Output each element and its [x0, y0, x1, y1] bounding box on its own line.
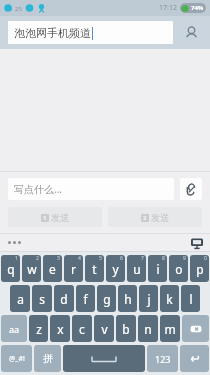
staticText: 9 [183, 255, 186, 262]
staticText: 7 [141, 255, 144, 262]
staticText: 25 [15, 5, 22, 13]
staticText: 4 [78, 255, 81, 262]
staticText: f [83, 291, 88, 307]
staticText: 8 [162, 255, 165, 262]
button[interactable]: q [1, 255, 20, 282]
button[interactable]: 拼 [34, 345, 61, 372]
button[interactable]: a [10, 285, 30, 312]
button[interactable]: h [118, 285, 137, 312]
staticText: r [71, 261, 76, 277]
staticText: @_#! [9, 354, 25, 364]
button[interactable]: y [106, 255, 125, 282]
staticText: j [147, 291, 151, 307]
button[interactable]: r [64, 255, 83, 282]
staticText: 5 [99, 255, 102, 262]
button[interactable]: z [29, 315, 48, 342]
staticText: x [57, 321, 64, 337]
button[interactable]: k [160, 285, 179, 312]
staticText: aa [9, 323, 20, 335]
staticText: 17:12 [159, 3, 177, 13]
staticText: 0 [204, 255, 207, 262]
staticText: n [144, 321, 152, 337]
staticText: 74% [191, 4, 204, 12]
staticText: p [196, 261, 204, 277]
staticText: s [39, 291, 45, 307]
staticText: y [112, 261, 119, 277]
button[interactable]: d [54, 285, 74, 312]
staticText: 发送 [51, 212, 69, 223]
button[interactable]: e [43, 255, 62, 282]
button[interactable]: c [72, 315, 92, 342]
button[interactable]: i [148, 255, 167, 282]
button[interactable]: Account [178, 20, 204, 46]
button[interactable]: Enter [180, 345, 209, 372]
button[interactable]: j [139, 285, 158, 312]
staticText: d [60, 291, 68, 307]
button[interactable]: @_#! [1, 345, 32, 372]
staticText: 1 [43, 214, 47, 222]
button[interactable]: s [32, 285, 52, 312]
staticText: b [122, 321, 130, 337]
button[interactable]: 泡泡网手机频道 [8, 21, 173, 44]
staticText: 拼 [43, 352, 53, 365]
button[interactable]: 写点什么... [8, 178, 174, 200]
staticText: o [175, 261, 183, 277]
button[interactable]: f [76, 285, 95, 312]
button[interactable]: 123 [147, 345, 178, 372]
staticText: t [92, 261, 97, 277]
button[interactable]: p [190, 255, 209, 282]
button[interactable]: m [160, 315, 180, 342]
button[interactable]: Backspace [182, 315, 209, 342]
staticText: q [7, 261, 15, 277]
button[interactable]: Space [63, 345, 145, 372]
button[interactable]: Keyboard [189, 235, 204, 250]
staticText: c [79, 321, 85, 337]
staticText: 泡泡网手机频道 [14, 26, 91, 40]
button[interactable]: g [97, 285, 116, 312]
button[interactable]: b [116, 315, 136, 342]
button[interactable]: o [169, 255, 188, 282]
staticText: m [164, 321, 176, 337]
staticText: 3 [57, 255, 60, 262]
button[interactable]: 2 [108, 207, 202, 227]
button[interactable]: Shift [1, 315, 27, 342]
button[interactable]: Attach [180, 178, 202, 200]
button[interactable]: w [22, 255, 41, 282]
staticText: u [133, 261, 141, 277]
button[interactable]: t [85, 255, 104, 282]
staticText: g [103, 291, 111, 307]
button[interactable]: 1 [8, 207, 102, 227]
staticText: 123 [155, 353, 171, 365]
staticText: a [17, 291, 24, 307]
staticText: l [189, 291, 193, 307]
staticText: i [156, 261, 160, 277]
staticText: z [36, 321, 42, 337]
staticText: e [49, 261, 56, 277]
staticText: 6 [120, 255, 123, 262]
button[interactable]: x [50, 315, 70, 342]
staticText: 2 [143, 214, 147, 222]
staticText: 1 [15, 255, 18, 262]
staticText: k [166, 291, 173, 307]
staticText: v [101, 321, 108, 337]
button[interactable]: More [8, 241, 21, 244]
button[interactable]: u [127, 255, 146, 282]
staticText: w [27, 261, 37, 277]
button[interactable]: v [94, 315, 114, 342]
staticText: 发送 [151, 212, 169, 223]
button[interactable]: l [181, 285, 200, 312]
staticText: 写点什么... [14, 182, 63, 196]
button[interactable]: n [138, 315, 158, 342]
staticText: 2 [36, 255, 39, 262]
staticText: h [124, 291, 132, 307]
